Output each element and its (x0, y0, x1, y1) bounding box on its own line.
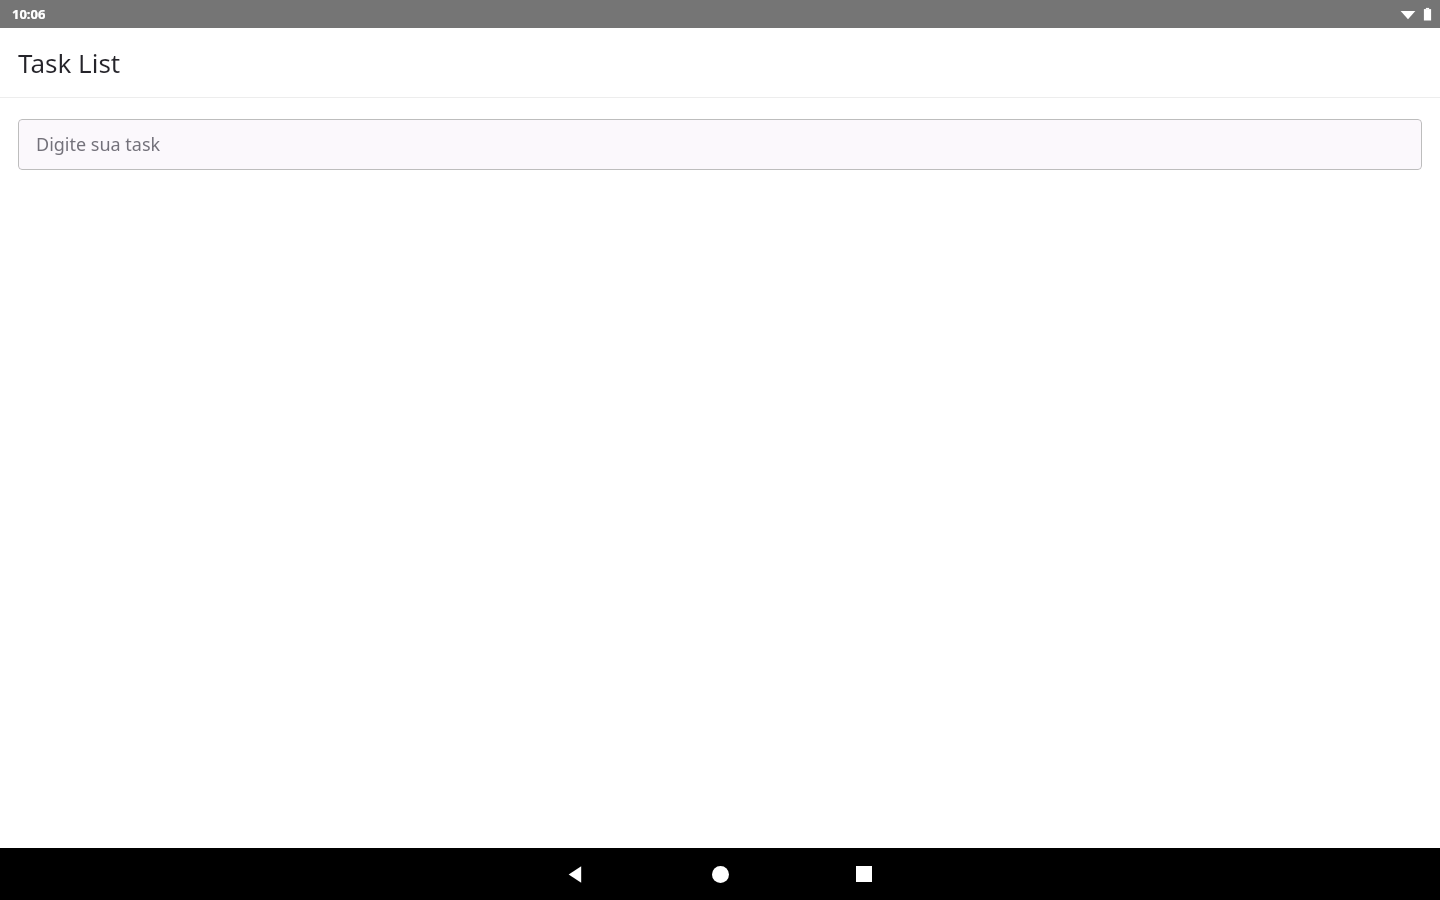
button[interactable]: Digite sua task (18, 119, 1422, 170)
staticText: Digite sua task (36, 132, 161, 157)
staticText: 10:06 (12, 5, 46, 23)
button[interactable]: Home (700, 854, 740, 894)
button[interactable]: Back (555, 854, 595, 894)
button[interactable]: Recent apps (844, 854, 884, 894)
staticText: Task List (18, 45, 121, 80)
